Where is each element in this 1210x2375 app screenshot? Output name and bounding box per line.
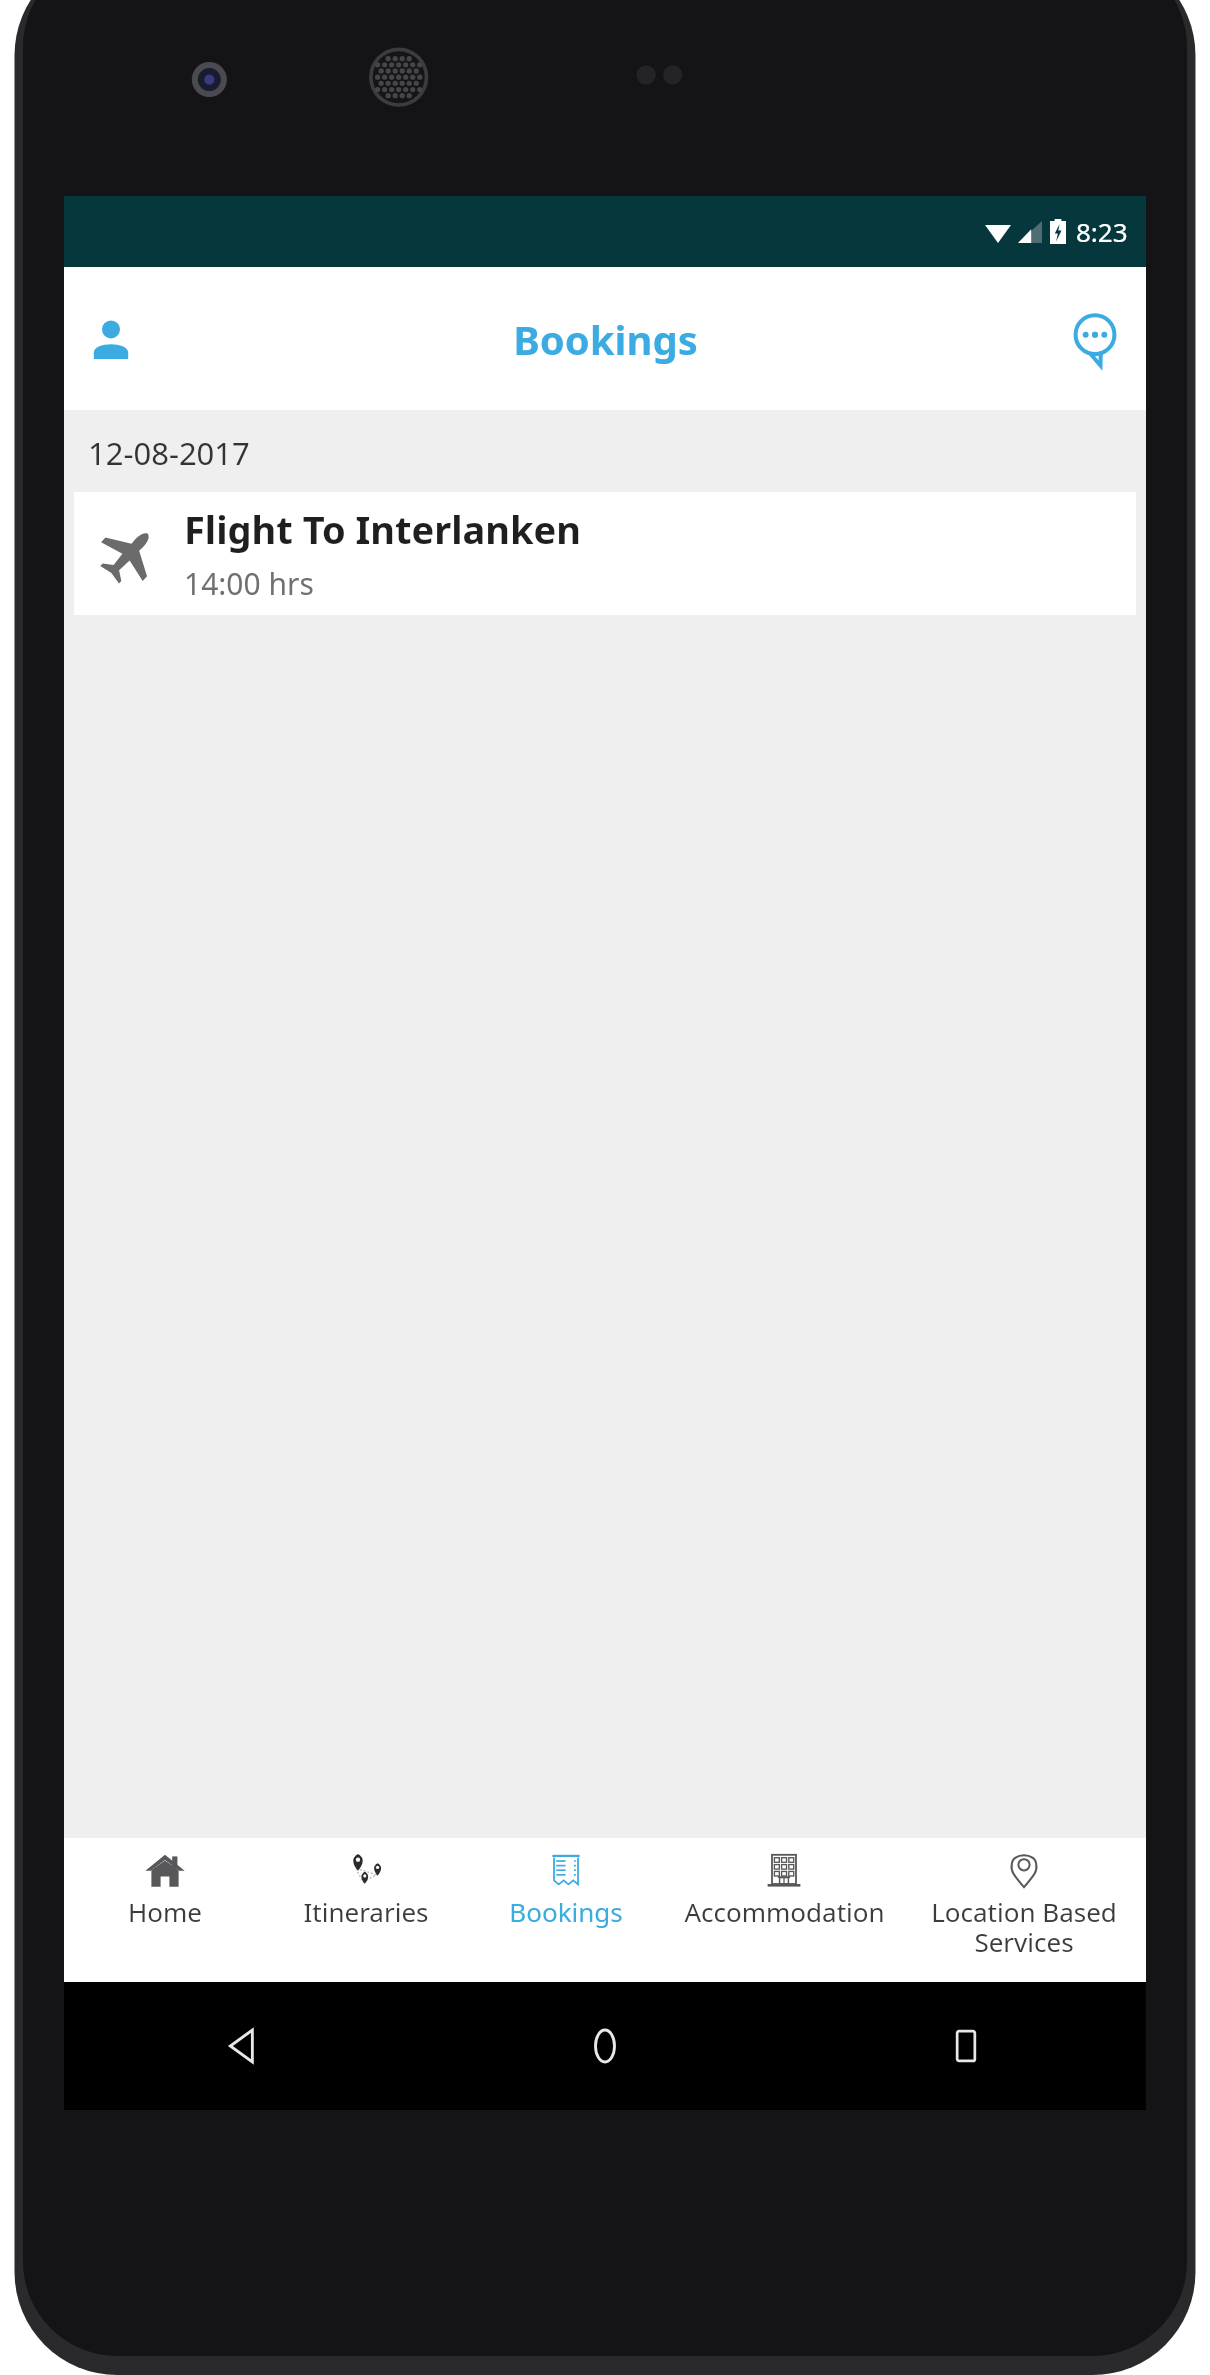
staticText: 8:23 [1076, 214, 1128, 249]
staticText: Bookings [509, 1894, 623, 1929]
button[interactable]: Itineraries [265, 1838, 466, 1982]
staticText: Home [128, 1894, 202, 1929]
button[interactable]: Flight To Interlanken [74, 492, 1136, 615]
staticText: Location Based Services [931, 1894, 1117, 1959]
staticText: Flight To Interlanken [184, 503, 581, 555]
staticText: Accommodation [684, 1894, 885, 1929]
button[interactable]: Home [64, 1838, 265, 1982]
button[interactable]: Back [64, 1982, 424, 2110]
button[interactable]: Location Based Services [902, 1838, 1146, 1982]
staticText: Itineraries [303, 1894, 429, 1929]
button[interactable]: Home [424, 1982, 785, 2110]
button[interactable]: Bookings [466, 1838, 666, 1982]
staticText: Bookings [513, 312, 698, 366]
button[interactable]: Messages [1062, 306, 1128, 372]
button[interactable]: Recent apps [785, 1982, 1146, 2110]
staticText: 14:00 hrs [184, 563, 314, 604]
staticText: 12-08-2017 [88, 432, 250, 474]
button[interactable]: Profile [80, 308, 142, 370]
button[interactable]: Accommodation [666, 1838, 902, 1982]
